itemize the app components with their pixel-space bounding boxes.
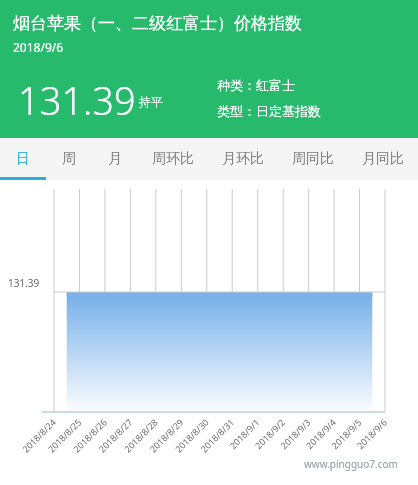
button[interactable]: 日 — [0, 138, 46, 180]
staticText: 月 — [108, 150, 122, 168]
button[interactable]: 月同比 — [348, 138, 418, 180]
staticText: 日 — [16, 150, 30, 168]
staticText: 月环比 — [222, 150, 264, 168]
staticText: 周同比 — [292, 150, 334, 168]
staticText: 类型：日定基指数 — [217, 103, 321, 119]
staticText: 2018/9/6 — [13, 39, 64, 55]
staticText: 持平 — [139, 94, 163, 109]
staticText: 种类：红富士 — [217, 77, 295, 93]
staticText: 周环比 — [152, 150, 194, 168]
staticText: 131.39 — [18, 74, 136, 126]
button[interactable]: 周环比 — [138, 138, 208, 180]
staticText: 烟台苹果（一、二级红富士）价格指数 — [13, 13, 302, 34]
button[interactable]: 月环比 — [208, 138, 278, 180]
button[interactable]: 周 — [46, 138, 92, 180]
button[interactable]: 月 — [92, 138, 138, 180]
button[interactable]: 周同比 — [278, 138, 348, 180]
staticText: 周 — [62, 150, 76, 168]
staticText: 月同比 — [362, 150, 404, 168]
